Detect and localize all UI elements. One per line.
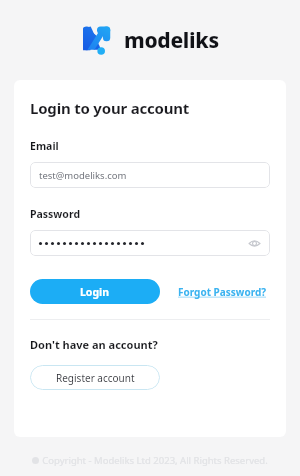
staticText: Login to your account bbox=[30, 98, 190, 118]
button[interactable]: Show password bbox=[247, 236, 261, 250]
staticText: modeliks bbox=[124, 26, 219, 55]
staticText: Email bbox=[30, 139, 59, 153]
button[interactable]: Forgot Password? bbox=[178, 279, 267, 304]
button[interactable]: test@modeliks.com bbox=[30, 162, 270, 188]
staticText: Register account bbox=[56, 371, 135, 385]
staticText: Login bbox=[80, 285, 110, 299]
staticText: Password bbox=[30, 207, 81, 221]
button[interactable]: Login bbox=[30, 279, 160, 304]
staticText: Don't have an account? bbox=[30, 337, 158, 352]
button[interactable]: Show password bbox=[30, 230, 270, 256]
staticText: test@modeliks.com bbox=[39, 169, 127, 182]
button[interactable]: Register account bbox=[30, 365, 160, 390]
staticText: Forgot Password? bbox=[178, 285, 267, 299]
staticText: Copyright - Modeliks Ltd 2023, All Right… bbox=[42, 454, 268, 467]
